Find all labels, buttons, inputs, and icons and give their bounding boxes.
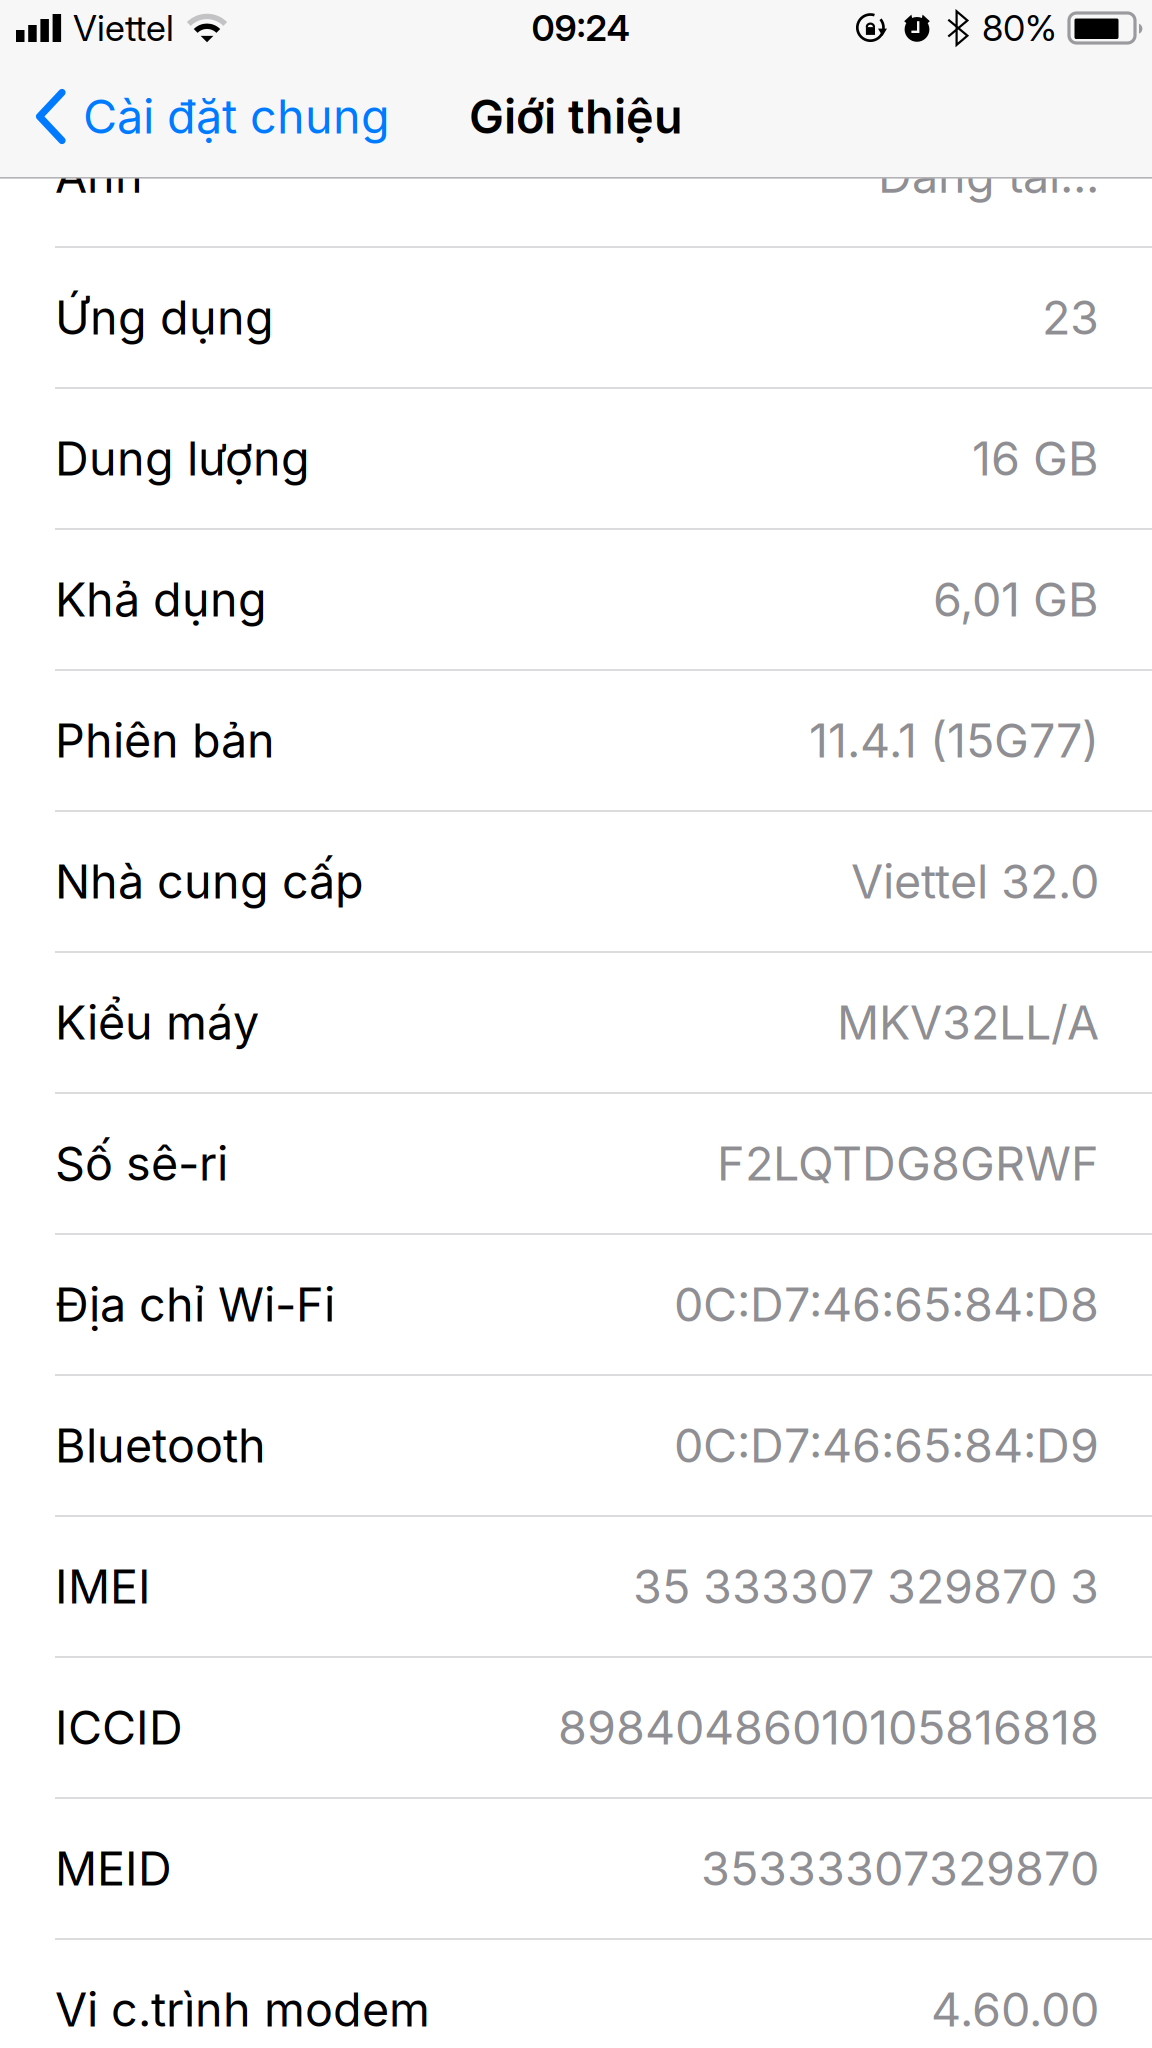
staticText: Nhà cung cấp [55,853,364,910]
button[interactable]: Phiên bản [0,671,1152,810]
button[interactable]: Dung lượng [0,389,1152,528]
staticText: 16 GB [972,430,1099,487]
staticText: IMEI [55,1558,151,1615]
button[interactable]: IMEI [0,1517,1152,1656]
staticText: 35333307329870 [701,1840,1099,1897]
staticText: MKV32LL/A [837,994,1099,1051]
staticText: 23 [1042,289,1099,346]
staticText: Phiên bản [55,712,275,769]
staticText: 35 333307 329870 3 [633,1558,1099,1615]
button[interactable]: Ảnh [0,181,1152,246]
staticText: Khả dụng [55,571,267,628]
staticText: 6,01 GB [933,571,1099,628]
button[interactable]: ICCID [0,1658,1152,1797]
staticText: Ảnh [55,147,143,204]
staticText: Địa chỉ Wi-Fi [55,1276,335,1333]
button[interactable]: Cài đặt chung [0,56,414,177]
staticText: 80% [982,6,1057,50]
staticText: 4.60.00 [931,1981,1099,2038]
staticText: F2LQTDG8GRWF [717,1135,1099,1192]
staticText: Viettel [73,6,174,50]
button[interactable]: Khả dụng [0,530,1152,669]
button[interactable]: Ứng dụng [0,248,1152,387]
staticText: Ứng dụng [55,289,274,346]
staticText: Kiểu máy [55,994,259,1051]
staticText: Dung lượng [55,430,310,487]
button[interactable]: Bluetooth [0,1376,1152,1515]
staticText: Vi c.trình modem [55,1981,430,2038]
button[interactable]: Số sê-ri [0,1094,1152,1233]
staticText: ICCID [55,1699,183,1756]
staticText: MEID [55,1840,172,1897]
staticText: Viettel 32.0 [851,853,1099,910]
button[interactable]: Địa chỉ Wi-Fi [0,1235,1152,1374]
button[interactable]: Kiểu máy [0,953,1152,1092]
staticText: Đang tải... [878,147,1099,204]
staticText: 0C:D7:46:65:84:D8 [674,1276,1099,1333]
staticText: 11.4.1 (15G77) [809,712,1099,769]
staticText: Giới thiệu [469,88,683,145]
button[interactable]: Nhà cung cấp [0,812,1152,951]
staticText: Bluetooth [55,1417,266,1474]
staticText: 09:24 [531,6,629,50]
staticText: 0C:D7:46:65:84:D9 [674,1417,1099,1474]
staticText: Số sê-ri [55,1135,228,1192]
button[interactable]: Vi c.trình modem [0,1940,1152,2048]
button[interactable]: MEID [0,1799,1152,1938]
staticText: 89840486010105816818 [558,1699,1099,1756]
staticText: Cài đặt chung [83,88,390,145]
